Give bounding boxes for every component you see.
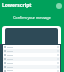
button[interactable] [3,49,60,53]
button[interactable] [3,65,60,69]
staticText: Confirm your message [0,15,64,20]
button[interactable]: Logo [56,3,62,9]
button[interactable] [3,53,60,57]
button[interactable] [3,61,60,65]
button[interactable] [3,57,60,61]
button[interactable] [3,45,60,49]
staticText: Lowerscript [2,2,32,9]
button[interactable] [3,69,60,72]
